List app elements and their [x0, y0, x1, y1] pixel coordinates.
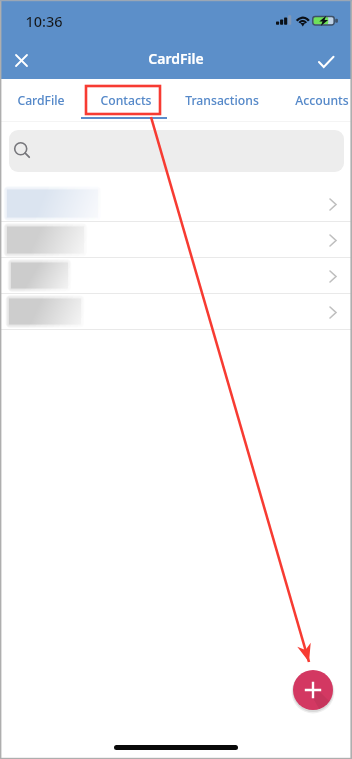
button[interactable] — [0, 294, 352, 330]
button[interactable]: Add — [293, 670, 333, 710]
button[interactable] — [0, 222, 352, 258]
button[interactable] — [0, 186, 352, 222]
button[interactable]: Accounts — [283, 79, 352, 122]
button[interactable]: CardFile — [3, 79, 79, 122]
staticText: CardFile — [148, 49, 204, 68]
staticText: Accounts — [295, 92, 349, 109]
staticText: Contacts — [100, 92, 152, 109]
button[interactable]: Close — [6, 45, 37, 76]
button[interactable]: Search — [9, 130, 344, 172]
button[interactable] — [0, 258, 352, 294]
button[interactable]: Contacts — [85, 79, 166, 122]
button[interactable]: Confirm — [310, 46, 341, 77]
staticText: 10:36 — [25, 11, 63, 31]
button[interactable]: Transactions — [175, 79, 268, 122]
staticText: CardFile — [17, 92, 65, 109]
staticText: Transactions — [185, 92, 259, 109]
